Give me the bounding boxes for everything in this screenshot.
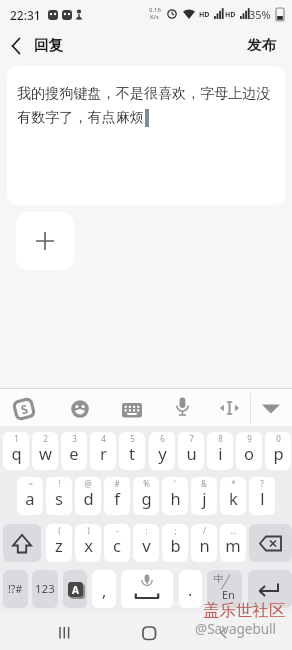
button[interactable]: 0: [265, 432, 291, 470]
staticText: q: [11, 442, 22, 464]
staticText: f: [114, 487, 120, 509]
staticText: p: [273, 442, 284, 464]
button[interactable]: ~: [17, 477, 43, 515]
staticText: (: [58, 525, 61, 536]
staticText: /: [203, 525, 206, 536]
button[interactable]: [52, 621, 76, 645]
staticText: i: [218, 442, 223, 464]
button[interactable]: [219, 401, 240, 415]
staticText: n: [199, 534, 210, 556]
staticText: 22:31: [10, 7, 41, 23]
button[interactable]: (: [46, 524, 72, 562]
staticText: b: [170, 534, 181, 556]
staticText: 123: [35, 581, 55, 597]
button[interactable]: &: [191, 477, 217, 515]
staticText: v: [142, 534, 151, 556]
button[interactable]: 1: [3, 432, 29, 470]
staticText: ~: [28, 478, 33, 489]
button[interactable]: [137, 621, 161, 645]
staticText: o: [244, 442, 254, 464]
staticText: 2: [43, 433, 48, 444]
staticText: -: [116, 525, 119, 536]
staticText: …: [230, 525, 237, 536]
button[interactable]: ;: [162, 524, 188, 562]
button[interactable]: [175, 397, 190, 417]
staticText: !?#: [8, 582, 23, 596]
staticText: 8: [218, 433, 223, 444]
button[interactable]: [249, 524, 292, 562]
button[interactable]: 7: [178, 432, 204, 470]
staticText: @Savagebull: [195, 620, 277, 638]
staticText: ): [87, 525, 90, 536]
button[interactable]: [122, 403, 142, 418]
staticText: x: [84, 534, 93, 556]
button[interactable]: [16, 212, 74, 270]
button[interactable]: ?: [249, 477, 275, 515]
button[interactable]: -: [104, 524, 130, 562]
button[interactable]: 9: [236, 432, 262, 470]
button[interactable]: :: [133, 524, 159, 562]
button[interactable]: !: [46, 477, 72, 515]
staticText: .: [188, 579, 193, 601]
button[interactable]: [212, 621, 236, 645]
staticText: !: [58, 478, 61, 489]
staticText: c: [113, 534, 121, 556]
button[interactable]: [6, 32, 30, 58]
button[interactable]: 8: [207, 432, 233, 470]
button[interactable]: /: [191, 524, 217, 562]
button[interactable]: S: [12, 397, 36, 421]
staticText: 我的搜狗键盘，不是很喜欢，字母上边没: [17, 84, 271, 102]
button[interactable]: ': [162, 477, 188, 515]
button[interactable]: [3, 524, 41, 562]
button[interactable]: [7, 66, 285, 205]
button[interactable]: %: [133, 477, 159, 515]
button[interactable]: 3: [61, 432, 87, 470]
button[interactable]: 中: [207, 570, 242, 608]
staticText: 盖乐世社区: [203, 600, 286, 621]
button[interactable]: !?#: [3, 570, 28, 608]
button[interactable]: 发布: [247, 36, 276, 54]
staticText: 4: [101, 433, 106, 444]
staticText: %: [143, 478, 150, 489]
button[interactable]: [71, 400, 89, 418]
button[interactable]: [261, 403, 281, 415]
staticText: 7: [189, 433, 194, 444]
staticText: &: [201, 478, 207, 489]
staticText: y: [158, 442, 167, 464]
button[interactable]: .: [179, 570, 202, 608]
button[interactable]: 123: [32, 570, 58, 608]
staticText: #: [114, 478, 120, 489]
staticText: g: [141, 487, 152, 509]
staticText: 有数字了，有点麻烦: [17, 108, 144, 126]
staticText: S: [19, 400, 30, 417]
button[interactable]: @: [75, 477, 101, 515]
staticText: l: [260, 487, 265, 509]
staticText: En: [222, 587, 235, 602]
button[interactable]: …: [220, 524, 246, 562]
button[interactable]: ): [75, 524, 101, 562]
button[interactable]: #: [104, 477, 130, 515]
staticText: 3: [72, 433, 77, 444]
staticText: m: [225, 534, 241, 556]
button[interactable]: [248, 570, 292, 608]
button[interactable]: A: [63, 570, 87, 608]
staticText: ,: [102, 580, 107, 602]
staticText: ': [174, 478, 176, 489]
button[interactable]: *: [220, 477, 246, 515]
button[interactable]: 2: [32, 432, 58, 470]
staticText: z: [55, 534, 63, 556]
button[interactable]: [121, 570, 173, 608]
staticText: A: [72, 583, 79, 597]
staticText: ;: [174, 525, 177, 536]
staticText: *: [231, 478, 236, 489]
staticText: HD: [225, 10, 236, 20]
staticText: 0.16: [149, 6, 161, 14]
staticText: @: [84, 478, 92, 489]
button[interactable]: ,: [92, 570, 116, 608]
button[interactable]: 5: [119, 432, 145, 470]
button[interactable]: 6: [149, 432, 175, 470]
staticText: t: [129, 442, 135, 464]
staticText: s: [55, 487, 63, 509]
button[interactable]: 4: [90, 432, 116, 470]
staticText: d: [83, 487, 94, 509]
